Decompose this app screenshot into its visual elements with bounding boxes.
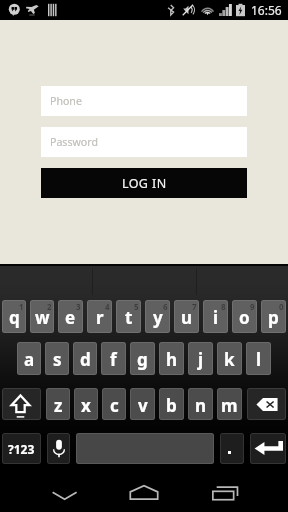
staticText: n: [195, 394, 207, 417]
staticText: 6: [163, 301, 168, 312]
button[interactable]: Phone: [41, 86, 247, 116]
staticText: y: [153, 306, 163, 329]
staticText: 16:56: [251, 2, 282, 18]
staticText: b: [166, 394, 177, 417]
button[interactable]: f: [101, 342, 126, 375]
staticText: r: [96, 306, 104, 329]
staticText: LOG IN: [122, 175, 167, 192]
staticText: 4: [105, 301, 110, 312]
staticText: s: [53, 348, 62, 371]
staticText: z: [54, 394, 63, 417]
staticText: 3: [76, 301, 81, 312]
button[interactable]: u: [174, 300, 199, 333]
button[interactable]: h: [159, 342, 184, 375]
button[interactable]: Home: [120, 464, 168, 512]
staticText: d: [80, 348, 91, 371]
button[interactable]: Password: [41, 127, 247, 157]
button[interactable]: Enter: [250, 433, 286, 464]
button[interactable]: w: [30, 300, 54, 333]
button[interactable]: y: [145, 300, 170, 333]
button[interactable]: q: [2, 300, 26, 333]
staticText: u: [181, 306, 193, 329]
button[interactable]: a: [17, 342, 41, 375]
button[interactable]: p: [261, 300, 286, 333]
staticText: c: [110, 394, 119, 417]
button[interactable]: b: [159, 388, 184, 420]
staticText: 2: [47, 301, 52, 312]
staticText: w: [35, 306, 50, 329]
button[interactable]: o: [232, 300, 257, 333]
staticText: x: [81, 394, 91, 417]
button[interactable]: l: [246, 342, 271, 375]
button[interactable]: j: [188, 342, 213, 375]
staticText: f: [110, 348, 117, 371]
staticText: h: [166, 348, 178, 371]
button[interactable]: k: [217, 342, 242, 375]
staticText: 1: [19, 301, 24, 312]
staticText: j: [198, 348, 204, 371]
button[interactable]: s: [45, 342, 69, 375]
button[interactable]: m: [217, 388, 242, 420]
staticText: g: [137, 348, 148, 371]
button[interactable]: x: [74, 388, 98, 420]
button[interactable]: Shift: [2, 388, 41, 420]
button[interactable]: Voice input: [47, 433, 70, 464]
staticText: ?123: [8, 441, 35, 457]
staticText: k: [224, 348, 235, 371]
staticText: 9: [250, 301, 255, 312]
button[interactable]: e: [58, 300, 83, 333]
staticText: Phone: [50, 94, 82, 108]
button[interactable]: t: [116, 300, 141, 333]
button[interactable]: Backspace: [247, 388, 286, 420]
button[interactable]: g: [130, 342, 155, 375]
staticText: o: [239, 306, 250, 329]
staticText: e: [65, 306, 76, 329]
staticText: a: [24, 348, 35, 371]
button[interactable]: n: [188, 388, 213, 420]
button[interactable]: [220, 433, 244, 464]
staticText: 0: [279, 301, 284, 312]
staticText: 5: [134, 301, 139, 312]
staticText: i: [213, 306, 219, 329]
staticText: q: [9, 306, 20, 329]
button[interactable]: z: [46, 388, 70, 420]
button[interactable]: v: [130, 388, 155, 420]
button[interactable]: LOG IN: [41, 168, 247, 198]
button[interactable]: Back: [41, 464, 89, 512]
button[interactable]: i: [203, 300, 228, 333]
staticText: l: [256, 348, 262, 371]
staticText: 8: [221, 301, 226, 312]
staticText: p: [268, 306, 279, 329]
staticText: t: [125, 306, 133, 329]
button[interactable]: ?123: [2, 433, 41, 464]
button[interactable]: Space: [76, 433, 214, 464]
button[interactable]: d: [73, 342, 97, 375]
staticText: v: [138, 394, 148, 417]
staticText: 7: [192, 301, 197, 312]
staticText: Password: [50, 135, 98, 149]
staticText: m: [221, 394, 238, 417]
button[interactable]: c: [102, 388, 126, 420]
button[interactable]: Recents: [201, 464, 249, 512]
button[interactable]: r: [87, 300, 112, 333]
